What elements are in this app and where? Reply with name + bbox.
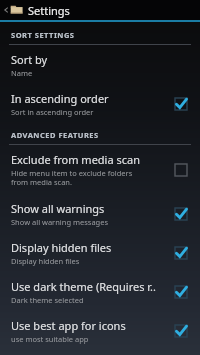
staticText: Show all warnings xyxy=(11,201,105,216)
staticText: Sort in ascending order xyxy=(11,107,94,117)
button[interactable]: Checked xyxy=(171,321,191,341)
button[interactable]: Use best app for icons xyxy=(0,311,200,350)
staticText: Dark theme selected xyxy=(11,295,84,305)
staticText: Use best app for icons xyxy=(11,318,126,333)
button[interactable]: Show all warnings xyxy=(0,194,200,233)
staticText: ADVANCED FEATURES xyxy=(11,130,99,140)
button[interactable]: In ascending order xyxy=(0,84,200,123)
button[interactable]: Checked xyxy=(171,204,191,224)
staticText: In ascending order xyxy=(11,91,109,106)
staticText: Hide menu item to exclude folders from m… xyxy=(11,168,133,188)
button[interactable]: Display hidden files xyxy=(0,233,200,272)
button[interactable]: Checked xyxy=(171,243,191,263)
button[interactable]: Exclude from media scan xyxy=(0,145,200,194)
staticText: Settings xyxy=(28,3,70,18)
button[interactable]: Navigate up xyxy=(0,0,200,20)
button[interactable]: Use dark theme (Requires r.. xyxy=(0,272,200,311)
staticText: SORT SETTINGS xyxy=(11,30,75,40)
staticText: Sort by xyxy=(11,52,48,67)
button[interactable]: Unchecked xyxy=(171,160,191,180)
button[interactable]: Sort by xyxy=(0,45,200,84)
staticText: Name xyxy=(11,68,33,78)
staticText: Use dark theme (Requires r.. xyxy=(11,279,156,294)
staticText: Exclude from media scan xyxy=(11,152,141,167)
staticText: use most suitable app xyxy=(11,334,89,344)
button[interactable]: Checked xyxy=(171,94,191,114)
button[interactable]: Checked xyxy=(171,282,191,302)
staticText: Display hidden files xyxy=(11,240,112,255)
other: Navigate up xyxy=(3,7,9,13)
staticText: Show all warning messages xyxy=(11,217,109,227)
staticText: Display hidden files xyxy=(11,256,80,266)
